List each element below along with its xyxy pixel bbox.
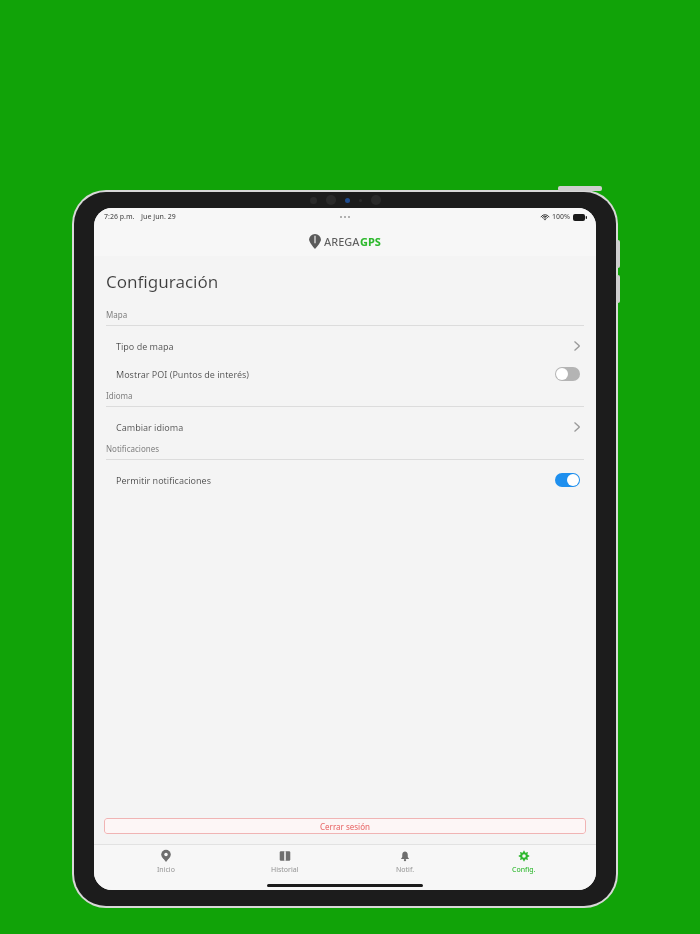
button[interactable]: Activado (555, 473, 580, 487)
staticText: 100% (552, 212, 570, 222)
button[interactable]: Desactivado (555, 367, 580, 381)
button[interactable]: Inicio (118, 850, 214, 875)
button[interactable]: Cerrar sesión (104, 818, 586, 834)
staticText: AREGA (324, 234, 360, 249)
button[interactable]: Cambiar idioma (94, 413, 596, 441)
staticText: Cambiar idioma (116, 421, 184, 433)
button[interactable]: Tipo de mapa (94, 332, 596, 360)
button[interactable]: Permitir notificaciones (94, 466, 596, 494)
button[interactable]: Historial (237, 850, 333, 875)
staticText: Historial (271, 865, 299, 875)
button[interactable]: Notif. (357, 850, 453, 875)
staticText: Inicio (157, 865, 175, 875)
staticText: Idioma (106, 390, 133, 401)
staticText: Mapa (106, 309, 128, 320)
staticText: Notif. (396, 865, 415, 875)
button[interactable]: Config. (476, 850, 572, 875)
staticText: Config. (512, 865, 536, 875)
staticText: 7:26 p.m. (104, 212, 135, 222)
staticText: Jue jun. 29 (141, 212, 176, 222)
staticText: GPS (360, 234, 381, 249)
staticText: Permitir notificaciones (116, 474, 212, 486)
staticText: Mostrar POI (Puntos de interés) (116, 368, 250, 380)
staticText: Cerrar sesión (320, 821, 370, 832)
staticText: Notificaciones (106, 443, 160, 454)
button[interactable]: Mostrar POI (Puntos de interés) (94, 360, 596, 388)
staticText: Tipo de mapa (116, 340, 174, 352)
staticText: Configuración (106, 270, 219, 293)
